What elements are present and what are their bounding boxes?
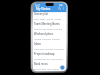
button[interactable]: Ideas [33,42,66,52]
button[interactable]: Search [58,7,61,10]
staticText: Hiking trip with friends [34,37,60,40]
staticText: Ideas [34,42,41,46]
button[interactable]: Weekend plans [33,32,66,42]
staticText: Project roadmap [34,52,55,56]
button[interactable]: Book recos [33,62,66,72]
staticText: Grocery list [34,12,49,16]
button[interactable]: Grocery list [33,12,66,22]
staticText: New app concept sketches [34,47,64,50]
staticText: Milestones for next sprint [34,57,63,60]
staticText: Weekend plans [34,32,53,36]
staticText: My Notes [36,7,51,11]
button[interactable]: Add note [60,65,65,70]
staticText: Milk, eggs, bread, coffee [34,17,62,20]
staticText: Discuss Q3 goals and the [34,27,63,30]
button[interactable]: Project roadmap [33,52,66,62]
staticText: ▮▮▮ [59,4,63,7]
staticText: Book recos [34,62,48,66]
staticText: Team Meeting Notes [34,22,60,26]
staticText: Fiction and non-fiction [34,67,60,70]
staticText: 9:41 [35,4,41,8]
button[interactable]: More options [62,7,65,10]
button[interactable]: Team Meeting Notes [33,22,66,32]
